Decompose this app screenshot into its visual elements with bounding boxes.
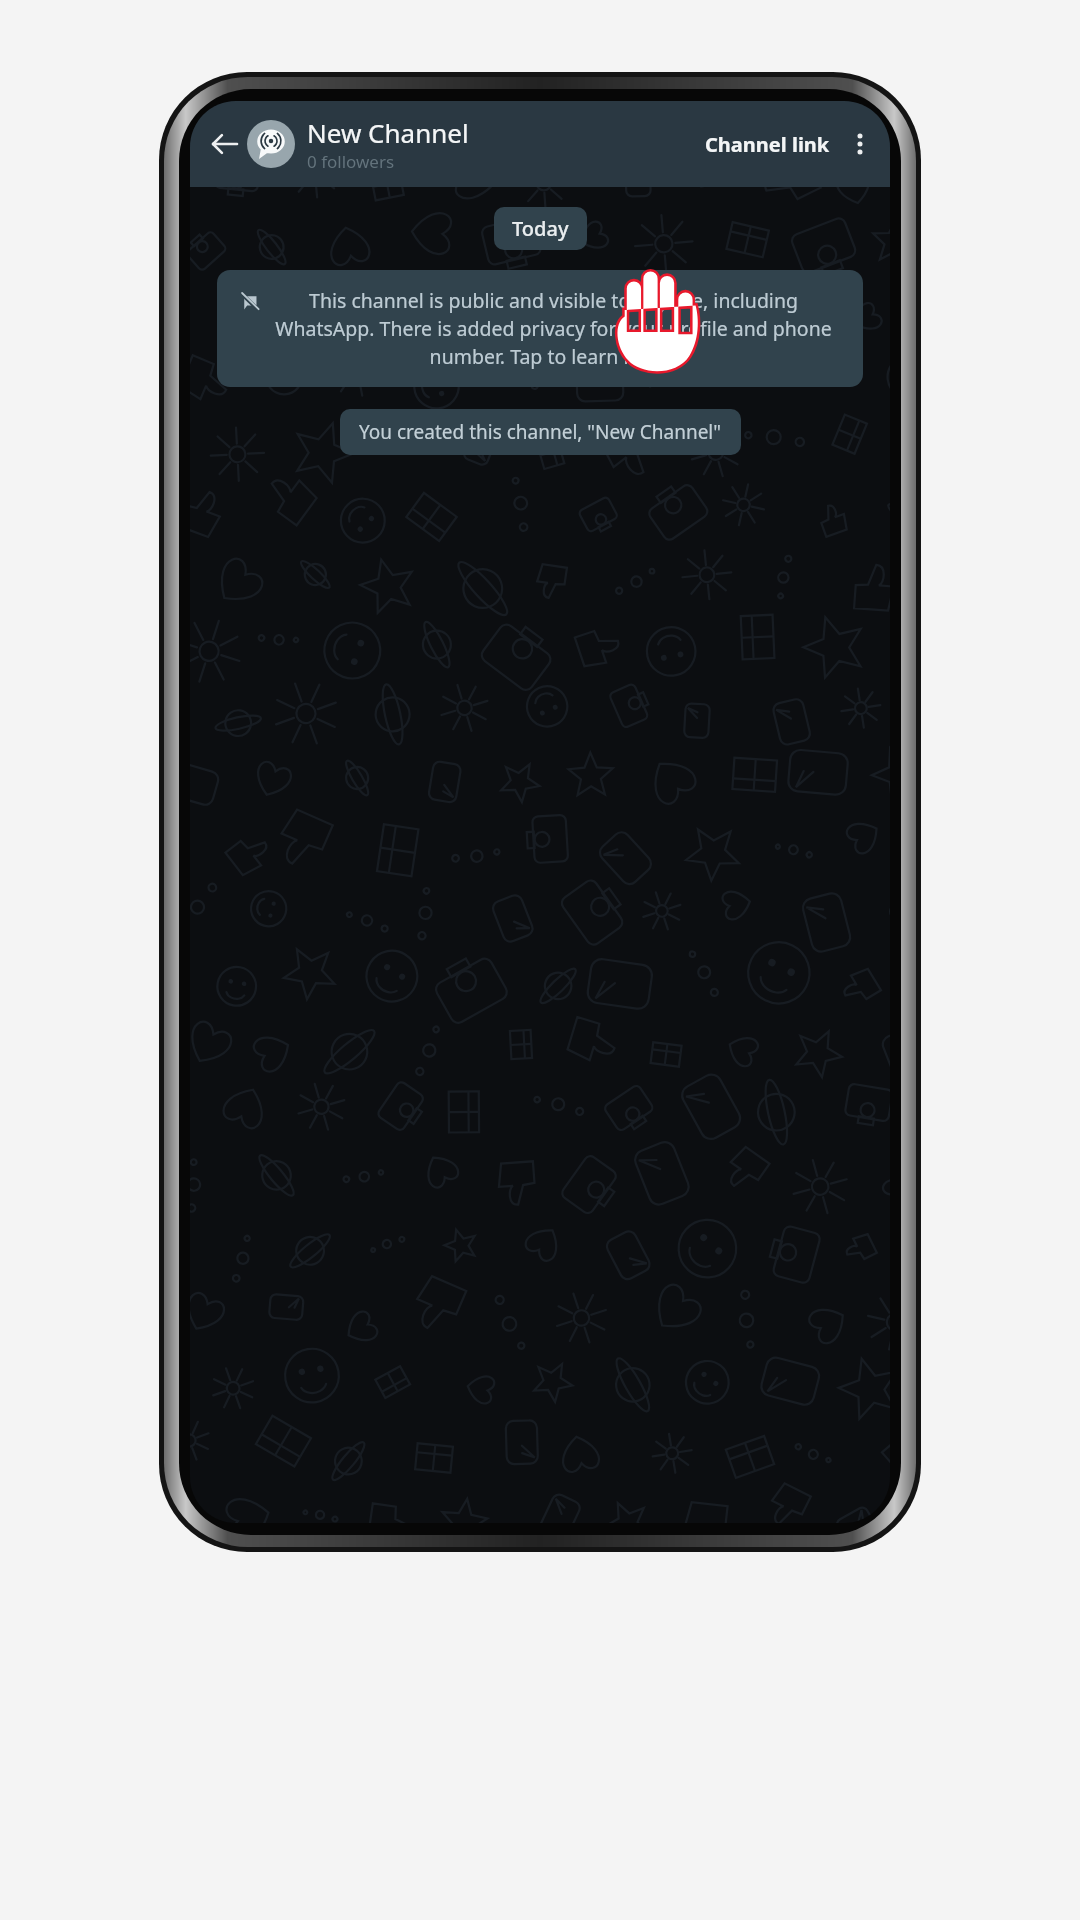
button[interactable]: Channel link: [700, 123, 835, 166]
button[interactable]: Today: [494, 207, 587, 250]
button[interactable]: You created this channel, "New Channel": [340, 409, 741, 455]
button[interactable]: New Channel: [247, 115, 700, 173]
staticText: New Channel: [307, 115, 469, 150]
button[interactable]: This channel is public and visible to an…: [217, 270, 863, 387]
button[interactable]: Back: [203, 123, 245, 165]
staticText: This channel is public and visible to an…: [268, 287, 839, 370]
staticText: Channel link: [705, 131, 830, 158]
staticText: Today: [512, 215, 569, 242]
staticText: 0 followers: [307, 150, 395, 173]
staticText: You created this channel, "New Channel": [359, 419, 722, 445]
button[interactable]: More options: [843, 127, 877, 161]
